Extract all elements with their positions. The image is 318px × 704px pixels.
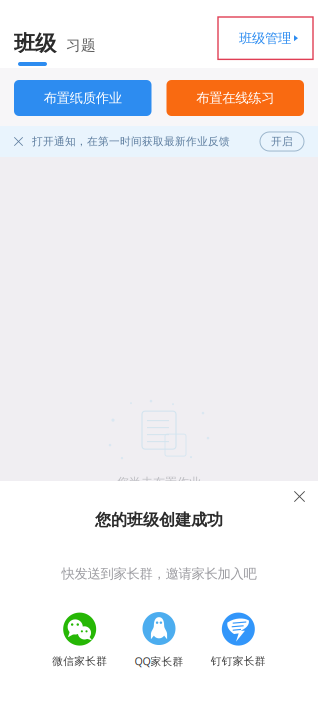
- button[interactable]: 布置在线练习: [166, 80, 304, 116]
- staticText: 布置纸质作业: [44, 90, 122, 106]
- staticText: 打开通知，在第一时间获取最新作业反馈: [32, 135, 230, 148]
- staticText: 您的班级创建成功: [95, 510, 223, 530]
- button[interactable]: 班级管理: [218, 14, 313, 56]
- button[interactable]: Dismiss: [11, 128, 26, 155]
- button[interactable]: 微信家长群: [40, 613, 119, 668]
- staticText: 快发送到家长群，邀请家长加入吧: [61, 566, 256, 582]
- button[interactable]: 班级: [14, 30, 66, 56]
- button[interactable]: Close: [287, 484, 312, 509]
- staticText: 微信家长群: [52, 655, 107, 668]
- button[interactable]: 开启: [260, 132, 304, 151]
- button[interactable]: 习题: [66, 36, 96, 56]
- staticText: 钉钉家长群: [211, 655, 266, 668]
- staticText: QQ家长群: [134, 654, 183, 668]
- staticText: 班级: [14, 30, 56, 56]
- staticText: 班级管理: [239, 30, 291, 46]
- button[interactable]: 钉钉家长群: [199, 613, 278, 668]
- button[interactable]: QQ家长群: [119, 612, 199, 668]
- staticText: 布置在线练习: [196, 90, 274, 106]
- staticText: 您尚未布置作业: [117, 475, 201, 490]
- staticText: 开启: [271, 135, 293, 148]
- staticText: 习题: [66, 36, 96, 54]
- button[interactable]: 布置纸质作业: [14, 80, 151, 116]
